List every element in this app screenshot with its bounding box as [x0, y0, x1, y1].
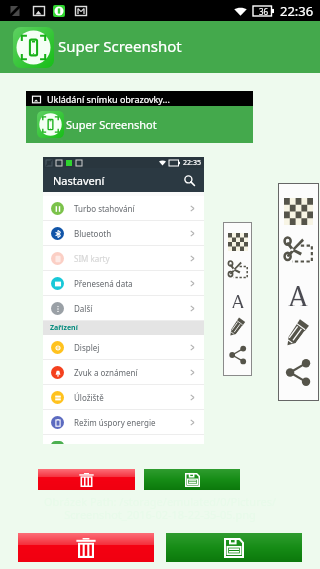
button[interactable]: Draw	[228, 316, 248, 336]
button[interactable]: Draw	[284, 317, 313, 346]
staticText: Displej	[74, 342, 100, 353]
button[interactable]: Background	[228, 233, 248, 251]
button[interactable]: Displej	[43, 335, 204, 360]
staticText: Ukládání snímku obrazovky...	[47, 93, 170, 105]
staticText: Turbo stahování	[74, 203, 135, 214]
button[interactable]: Crop	[284, 236, 313, 265]
button[interactable]: Add text	[228, 288, 248, 308]
other: Search	[184, 175, 195, 186]
button[interactable]: Bluetooth	[43, 221, 204, 246]
button[interactable]: Přenesená data	[43, 271, 204, 296]
staticText: Super Screenshot	[58, 36, 182, 56]
staticText: Přenesená data	[74, 278, 133, 289]
staticText: SIM karty	[74, 253, 110, 264]
staticText: Zvuk a oznámení	[74, 367, 138, 378]
staticText: Úložiště	[74, 392, 104, 403]
staticText: Režim úspory energie	[74, 417, 156, 428]
staticText: Zařízení	[50, 323, 78, 333]
staticText: Super Screenshot	[66, 117, 157, 132]
staticText: Nastavení	[53, 173, 105, 188]
button[interactable]: Share	[228, 345, 248, 365]
button[interactable]: Delete	[38, 469, 135, 490]
staticText: A	[231, 288, 245, 308]
button[interactable]: Další	[43, 296, 204, 321]
button[interactable]: Add text	[284, 277, 313, 306]
staticText: 22:35	[183, 158, 201, 168]
staticText: Bluetooth	[74, 228, 112, 239]
button[interactable]: Zvuk a oznámení	[43, 360, 204, 385]
button[interactable]: Delete	[18, 533, 154, 562]
staticText: A	[288, 277, 309, 306]
button[interactable]: Save	[144, 469, 240, 490]
button[interactable]: Save	[166, 533, 302, 562]
button[interactable]: Úložiště	[43, 385, 204, 410]
staticText: 36	[259, 6, 269, 17]
button[interactable]: Share	[284, 358, 313, 387]
staticText: Další	[74, 303, 93, 314]
button[interactable]: Crop	[228, 260, 248, 280]
button[interactable]: Super Screenshot	[0, 21, 320, 73]
button[interactable]: Super Screenshot	[26, 106, 253, 143]
button[interactable]: Režim úspory energie	[43, 410, 204, 435]
button[interactable]: Turbo stahování	[43, 196, 204, 221]
button[interactable]: Background	[284, 198, 313, 225]
button[interactable]: SIM karty	[43, 246, 204, 271]
staticText: 22:36	[280, 2, 314, 20]
